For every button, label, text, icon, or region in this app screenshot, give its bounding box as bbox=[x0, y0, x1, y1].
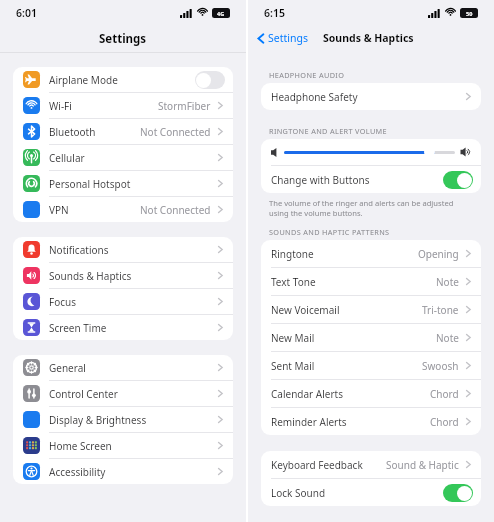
staticText: Settings bbox=[268, 31, 308, 45]
staticText: Chord bbox=[430, 387, 459, 401]
button[interactable]: New Mail bbox=[261, 324, 481, 352]
button[interactable]: Sent Mail bbox=[261, 352, 481, 380]
staticText: Ringtone bbox=[271, 247, 314, 261]
staticText: Sounds & Haptics bbox=[323, 31, 414, 45]
staticText: StormFiber bbox=[158, 99, 211, 113]
staticText: 50 bbox=[466, 10, 473, 17]
staticText: SOUNDS AND HAPTIC PATTERNS bbox=[269, 227, 390, 237]
button[interactable]: Headphone Safety bbox=[261, 83, 481, 110]
staticText: Change with Buttons bbox=[271, 173, 370, 187]
staticText: Airplane Mode bbox=[49, 73, 118, 87]
button[interactable]: VPN bbox=[13, 197, 233, 222]
button[interactable]: Focus bbox=[13, 289, 233, 315]
button[interactable]: Back to Settings bbox=[248, 31, 312, 45]
button[interactable]: Keyboard Feedback bbox=[261, 451, 481, 479]
button[interactable]: Screen Time bbox=[13, 315, 233, 340]
button[interactable]: Personal Hotspot bbox=[13, 171, 233, 197]
staticText: RINGTONE AND ALERT VOLUME bbox=[269, 126, 387, 136]
staticText: Focus bbox=[49, 295, 77, 309]
staticText: Personal Hotspot bbox=[49, 177, 131, 191]
button[interactable]: New Voicemail bbox=[261, 296, 481, 324]
staticText: Sound & Haptic bbox=[386, 458, 459, 472]
staticText: Display & Brightness bbox=[49, 413, 147, 427]
button[interactable]: Calendar Alerts bbox=[261, 380, 481, 408]
staticText: The volume of the ringer and alerts can … bbox=[269, 198, 454, 218]
staticText: Sounds & Haptics bbox=[49, 269, 132, 283]
staticText: VPN bbox=[49, 203, 69, 217]
staticText: Note bbox=[436, 331, 459, 345]
staticText: Swoosh bbox=[422, 359, 459, 373]
staticText: Notifications bbox=[49, 243, 109, 257]
button[interactable]: Notifications bbox=[13, 237, 233, 263]
staticText: Home Screen bbox=[49, 439, 112, 453]
staticText: Settings bbox=[99, 31, 147, 47]
button[interactable]: Accessibility bbox=[13, 459, 233, 484]
button[interactable]: Display & Brightness bbox=[13, 407, 233, 433]
staticText: Opening bbox=[418, 247, 459, 261]
staticText: 6:01 bbox=[16, 6, 37, 20]
staticText: HEADPHONE AUDIO bbox=[269, 70, 345, 80]
staticText: Not Connected bbox=[140, 203, 211, 217]
button[interactable]: Text Tone bbox=[261, 268, 481, 296]
button[interactable] bbox=[443, 484, 473, 502]
staticText: Sent Mail bbox=[271, 359, 315, 373]
staticText: 4G bbox=[217, 10, 225, 17]
staticText: Cellular bbox=[49, 151, 85, 165]
staticText: Chord bbox=[430, 415, 459, 429]
button[interactable]: Ringtone bbox=[261, 240, 481, 268]
staticText: Note bbox=[436, 275, 459, 289]
staticText: 6:15 bbox=[264, 6, 285, 20]
staticText: Reminder Alerts bbox=[271, 415, 347, 429]
button[interactable]: Airplane Mode bbox=[13, 67, 233, 93]
staticText: New Voicemail bbox=[271, 303, 340, 317]
staticText: Text Tone bbox=[271, 275, 316, 289]
staticText: Screen Time bbox=[49, 321, 107, 335]
button[interactable]: Bluetooth bbox=[13, 119, 233, 145]
button[interactable]: Reminder Alerts bbox=[261, 408, 481, 435]
button[interactable]: Volume slider bbox=[424, 147, 435, 157]
button[interactable]: General bbox=[13, 355, 233, 381]
staticText: General bbox=[49, 361, 86, 375]
staticText: New Mail bbox=[271, 331, 315, 345]
staticText: Accessibility bbox=[49, 465, 106, 479]
button[interactable]: Change with Buttons bbox=[261, 166, 481, 193]
button[interactable]: Wi-Fi bbox=[13, 93, 233, 119]
button[interactable]: Sounds & Haptics bbox=[13, 263, 233, 289]
button[interactable]: Lock Sound bbox=[261, 479, 481, 506]
staticText: Wi-Fi bbox=[49, 99, 72, 113]
button[interactable]: Cellular bbox=[13, 145, 233, 171]
button[interactable] bbox=[195, 71, 225, 89]
staticText: Lock Sound bbox=[271, 486, 326, 500]
staticText: Control Center bbox=[49, 387, 118, 401]
staticText: Headphone Safety bbox=[271, 90, 358, 104]
staticText: Not Connected bbox=[140, 125, 211, 139]
staticText: Calendar Alerts bbox=[271, 387, 343, 401]
button[interactable] bbox=[443, 171, 473, 189]
staticText: Bluetooth bbox=[49, 125, 96, 139]
button[interactable]: Control Center bbox=[13, 381, 233, 407]
staticText: Keyboard Feedback bbox=[271, 458, 363, 472]
staticText: Tri-tone bbox=[422, 303, 459, 317]
button[interactable]: Home Screen bbox=[13, 433, 233, 459]
